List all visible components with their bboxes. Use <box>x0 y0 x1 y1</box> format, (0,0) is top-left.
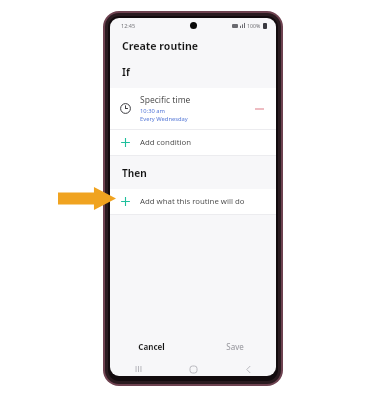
staticText: Save <box>226 341 244 352</box>
staticText: Create routine <box>122 39 198 53</box>
staticText: Every Wednesday <box>140 115 188 123</box>
staticText: 12:45 <box>121 22 136 29</box>
button[interactable]: Add what this routine will do <box>110 189 276 214</box>
button[interactable]: Add condition <box>110 130 276 155</box>
staticText: 10:30 am <box>140 107 165 115</box>
button[interactable]: Recents <box>110 362 166 376</box>
staticText: Specific time <box>140 94 191 106</box>
button[interactable]: Back <box>221 362 276 376</box>
staticText: Cancel <box>138 341 165 352</box>
staticText: Then <box>122 166 147 180</box>
staticText: Add what this routine will do <box>140 196 245 207</box>
button[interactable]: Cancel <box>110 335 193 358</box>
button[interactable]: Specific time <box>110 88 276 129</box>
button[interactable]: Remove condition <box>252 102 266 116</box>
button[interactable]: Save <box>193 335 276 358</box>
staticText: Add condition <box>140 137 192 148</box>
button[interactable]: Home <box>166 362 221 376</box>
staticText: 100% <box>247 22 261 29</box>
staticText: If <box>122 65 130 79</box>
